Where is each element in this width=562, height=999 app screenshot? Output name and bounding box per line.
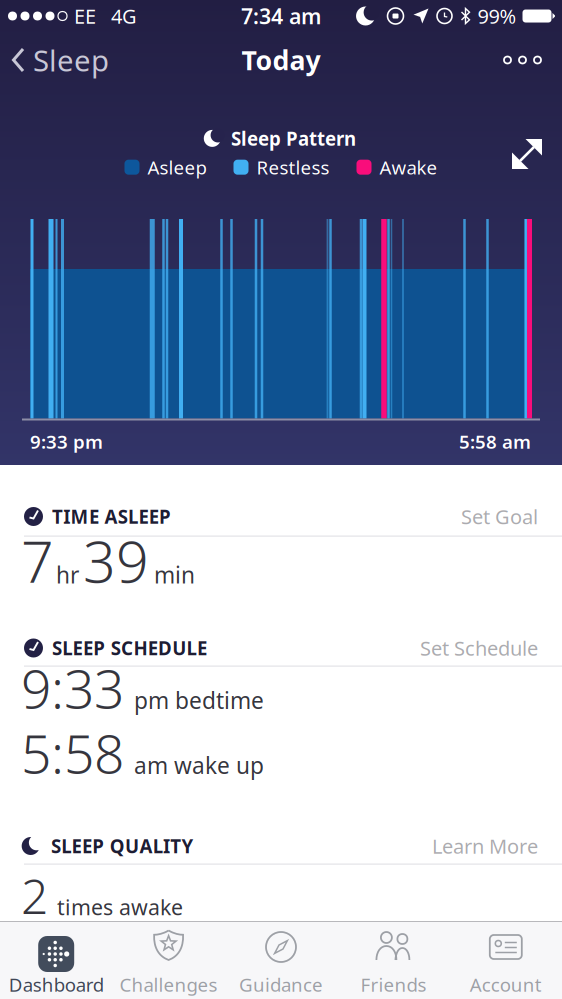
staticText: 5:58 am xyxy=(459,429,531,454)
staticText: times awake xyxy=(57,893,183,921)
staticText: TIME ASLEEP xyxy=(52,504,171,529)
staticText: 5:58 xyxy=(21,717,124,788)
staticText: Restless xyxy=(256,155,329,180)
staticText: 99% xyxy=(477,3,516,29)
staticText: Challenges xyxy=(120,972,218,997)
staticText: Awake xyxy=(379,155,437,180)
staticText: Set Goal xyxy=(461,503,538,530)
staticText: am wake up xyxy=(134,750,264,780)
button[interactable]: Guidance xyxy=(225,922,337,999)
staticText: 39 xyxy=(83,522,149,599)
button[interactable]: Friends xyxy=(337,922,450,999)
staticText: SLEEP SCHEDULE xyxy=(52,636,207,660)
staticText: Friends xyxy=(360,972,426,997)
staticText: Sleep xyxy=(33,40,109,79)
staticText: Today xyxy=(241,42,320,78)
staticText: 7 xyxy=(21,522,54,599)
staticText: min xyxy=(154,559,195,590)
staticText: EE xyxy=(74,3,96,29)
button[interactable] xyxy=(0,0,542,169)
button[interactable]: Set Goal xyxy=(461,503,538,530)
button[interactable]: Challenges xyxy=(112,922,225,999)
staticText: Sleep Pattern xyxy=(231,126,356,151)
staticText: 9:33 pm xyxy=(30,429,103,454)
staticText: Guidance xyxy=(239,972,323,997)
staticText: Learn More xyxy=(432,833,538,859)
staticText: Dashboard xyxy=(9,972,104,997)
staticText: 7:34 am xyxy=(241,2,321,30)
staticText: 2 xyxy=(21,863,48,927)
button[interactable]: Set Schedule xyxy=(420,635,538,661)
staticText: Account xyxy=(470,972,542,997)
staticText: pm bedtime xyxy=(134,685,264,715)
button[interactable]: Account xyxy=(450,922,562,999)
button[interactable]: Sleep xyxy=(0,40,109,79)
staticText: 9:33 xyxy=(21,652,124,723)
button[interactable]: Dashboard xyxy=(0,922,112,999)
button[interactable] xyxy=(504,56,562,63)
staticText: Asleep xyxy=(147,155,206,180)
staticText: 4G xyxy=(111,3,137,29)
staticText: hr xyxy=(56,559,79,590)
button[interactable]: Learn More xyxy=(432,833,538,859)
staticText: Set Schedule xyxy=(420,635,538,661)
staticText: SLEEP QUALITY xyxy=(51,834,194,858)
